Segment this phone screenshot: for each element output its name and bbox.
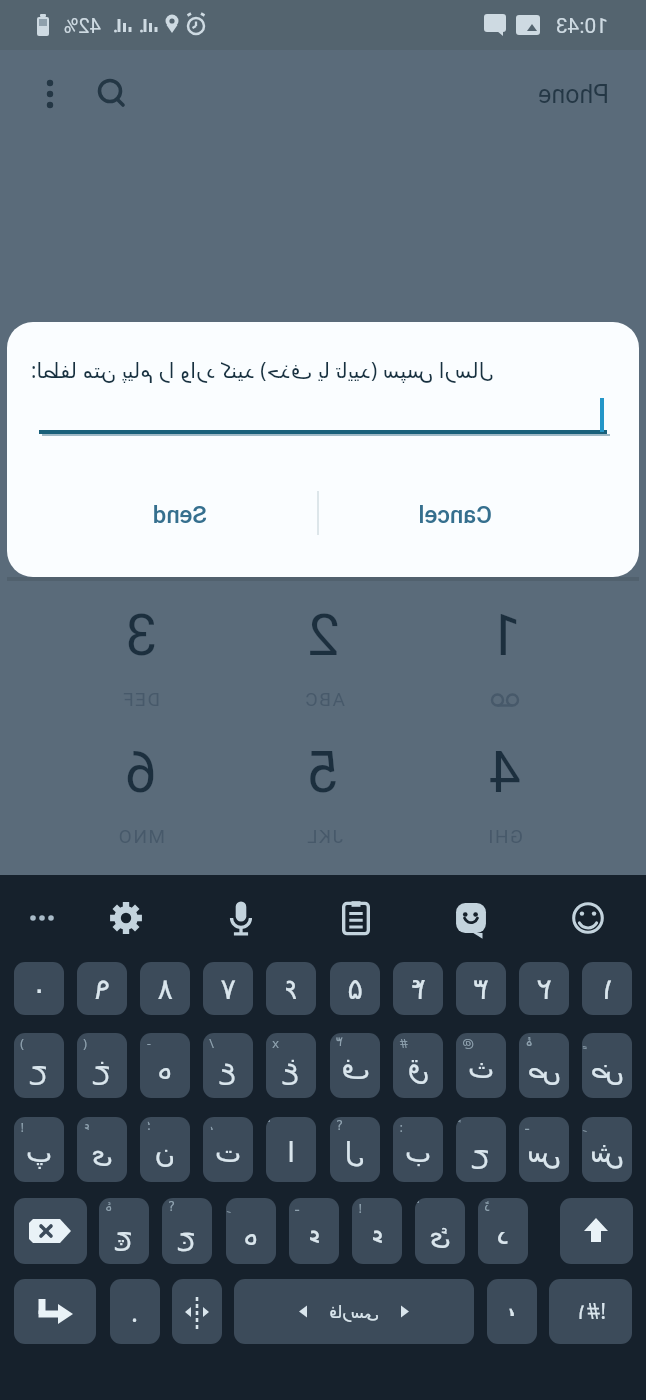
staticText: ه: [157, 1052, 172, 1085]
button[interactable]: خ: [77, 1033, 127, 1098]
staticText: !: [20, 1118, 24, 1136]
staticText: ؟: [336, 1118, 343, 1133]
button[interactable]: ف: [330, 1033, 380, 1098]
button[interactable]: ب: [393, 1117, 443, 1182]
button[interactable]: ه: [140, 1033, 190, 1098]
button[interactable]: Send: [110, 492, 250, 538]
staticText: MNO: [117, 825, 165, 847]
staticText: !#۱: [575, 1297, 606, 1326]
button[interactable]: ل: [330, 1117, 380, 1182]
staticText: !: [358, 1199, 362, 1217]
staticText: ل: [344, 1136, 365, 1169]
staticText: ۸: [157, 972, 173, 1006]
staticText: 4: [488, 739, 521, 806]
button[interactable]: ۲: [519, 962, 569, 1015]
button[interactable]: ه: [226, 1198, 276, 1264]
button[interactable]: ۶: [266, 962, 316, 1015]
staticText: ۵: [347, 972, 363, 1006]
button[interactable]: ۵: [330, 962, 380, 1015]
button[interactable]: ث: [456, 1033, 506, 1098]
staticText: ؛: [146, 1118, 151, 1133]
staticText: Phone: [538, 80, 609, 109]
button[interactable]: ن: [140, 1117, 190, 1182]
staticText: ص: [527, 1052, 561, 1085]
staticText: ن: [154, 1136, 175, 1169]
button[interactable]: ح: [456, 1117, 506, 1182]
button[interactable]: ۷: [203, 962, 253, 1015]
staticText: @: [462, 1034, 474, 1052]
button[interactable]: [14, 1198, 87, 1264]
staticText: x: [272, 1034, 279, 1052]
button[interactable]: ق: [393, 1033, 443, 1098]
staticText: پ: [25, 1136, 52, 1169]
button[interactable]: ئ: [415, 1198, 465, 1264]
staticText: ۂ: [525, 1034, 533, 1049]
staticText: 3: [124, 602, 157, 669]
button[interactable]: ۱: [582, 962, 632, 1015]
staticText: ه: [243, 1218, 258, 1251]
staticText: ض: [590, 1052, 624, 1085]
button[interactable]: [447, 894, 495, 942]
button[interactable]: چ: [99, 1198, 149, 1264]
staticText: ت: [214, 1136, 241, 1169]
button[interactable]: ی: [77, 1117, 127, 1182]
button[interactable]: ۸: [140, 962, 190, 1015]
button[interactable]: [332, 894, 380, 942]
staticText: ا: [287, 1136, 295, 1169]
staticText: ۹: [94, 972, 110, 1006]
button[interactable]: [18, 894, 66, 942]
button[interactable]: ح: [14, 1033, 64, 1098]
button[interactable]: [564, 894, 612, 942]
staticText: ی: [91, 1136, 113, 1169]
button[interactable]: Cancel: [385, 492, 525, 538]
button[interactable]: [560, 1198, 633, 1264]
staticText: ؟: [168, 1199, 175, 1214]
button[interactable]: [26, 70, 74, 118]
staticText: ABC: [303, 688, 345, 710]
button[interactable]: !#۱: [549, 1279, 632, 1344]
button[interactable]: ۹: [77, 962, 127, 1015]
button[interactable]: پ: [14, 1117, 64, 1182]
staticText: ب: [404, 1136, 431, 1169]
button[interactable]: ۴: [393, 962, 443, 1015]
staticText: (: [83, 1034, 87, 1052]
staticText: ،: [209, 1118, 214, 1133]
button[interactable]: ا: [266, 1117, 316, 1182]
staticText: ء: [370, 1218, 384, 1251]
staticText: ۲: [536, 972, 552, 1006]
staticText: غ: [282, 1052, 299, 1085]
staticText: چ: [114, 1218, 133, 1251]
button[interactable]: [217, 894, 265, 942]
button[interactable]: ۳: [456, 962, 506, 1015]
button[interactable]: ء: [352, 1198, 402, 1264]
staticText: 42%: [63, 14, 101, 37]
button[interactable]: ش: [582, 1117, 632, 1182]
button[interactable]: [88, 70, 136, 118]
button[interactable]: س: [519, 1117, 569, 1182]
staticText: 1: [488, 602, 521, 669]
button[interactable]: [102, 894, 150, 942]
staticText: Cancel: [418, 501, 492, 529]
staticText: JKL: [305, 825, 343, 847]
staticText: .: [131, 1294, 138, 1329]
button[interactable]: ص: [519, 1033, 569, 1098]
staticText: ج: [177, 1218, 196, 1251]
button[interactable]: ج: [162, 1198, 212, 1264]
button[interactable]: ء: [289, 1198, 339, 1264]
button[interactable]: ض: [582, 1033, 632, 1098]
button[interactable]: [14, 1279, 96, 1344]
button[interactable]: ۰: [14, 962, 64, 1015]
button[interactable]: غ: [266, 1033, 316, 1098]
button[interactable]: [172, 1279, 222, 1344]
button[interactable]: د: [478, 1198, 528, 1264]
staticText: ش: [589, 1136, 624, 1169]
button[interactable]: فارسی: [234, 1279, 474, 1344]
staticText: ۶: [283, 972, 299, 1006]
button[interactable]: .: [110, 1279, 160, 1344]
button[interactable]: ع: [203, 1033, 253, 1098]
staticText: ء: [307, 1218, 321, 1251]
button[interactable]: ،: [487, 1279, 537, 1344]
staticText: :: [399, 1118, 403, 1136]
button[interactable]: ت: [203, 1117, 253, 1182]
staticText: ۳: [336, 1034, 343, 1049]
